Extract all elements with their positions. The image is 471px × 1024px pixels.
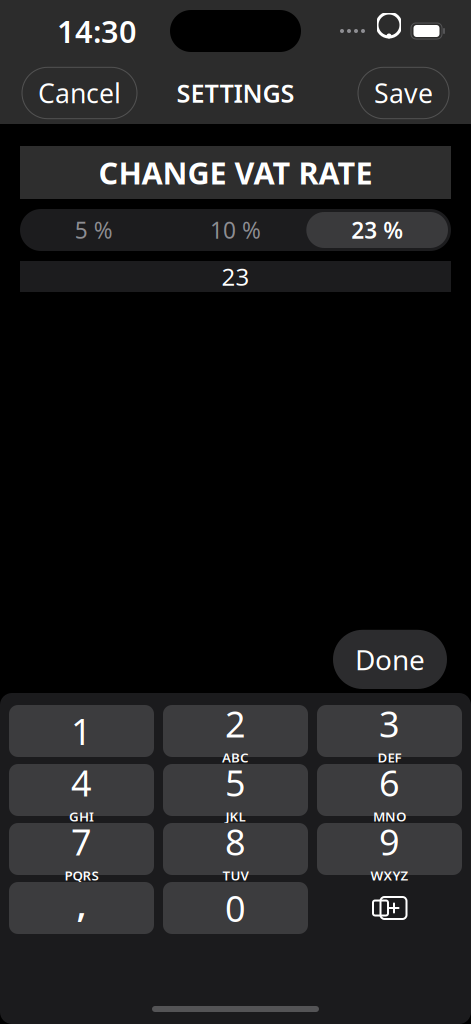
staticText: JKL <box>225 808 245 825</box>
staticText: 10 % <box>210 215 261 245</box>
staticText: WXYZ <box>370 867 408 884</box>
button[interactable]: 5 <box>163 764 308 816</box>
staticText: Save <box>374 75 433 111</box>
staticText: 23 <box>221 261 249 292</box>
button[interactable]: 23 % <box>306 212 448 248</box>
button[interactable]: 9 <box>317 823 462 875</box>
staticText: , <box>76 879 86 927</box>
button[interactable]: 8 <box>163 823 308 875</box>
button[interactable]: 4 <box>9 764 154 816</box>
staticText: 5 <box>225 759 246 806</box>
staticText: DEF <box>377 749 401 766</box>
staticText: TUV <box>222 867 248 884</box>
staticText: 2 <box>225 700 246 747</box>
button[interactable]: Done <box>333 630 447 689</box>
staticText: 8 <box>225 818 246 865</box>
button[interactable]: 7 <box>9 823 154 875</box>
staticText: MNO <box>373 808 406 825</box>
staticText: 5 % <box>75 215 113 245</box>
button[interactable]: 1 <box>9 705 154 757</box>
button[interactable]: 3 <box>317 705 462 757</box>
button[interactable]: 5 % <box>23 212 165 248</box>
staticText: 9 <box>379 818 400 865</box>
staticText: 6 <box>379 759 400 806</box>
button[interactable]: 0 <box>163 882 308 934</box>
button[interactable]: Save <box>358 67 449 119</box>
staticText: SETTINGS <box>176 76 294 110</box>
button[interactable]: Cancel <box>22 67 137 119</box>
staticText: 4 <box>71 759 92 806</box>
button[interactable]: 2 <box>163 705 308 757</box>
button[interactable]: Comma <box>9 882 154 934</box>
staticText: Cancel <box>38 75 121 111</box>
staticText: GHI <box>69 808 94 825</box>
staticText: PQRS <box>64 867 98 884</box>
staticText: 23 % <box>351 215 403 245</box>
staticText: 0 <box>225 884 246 932</box>
button[interactable]: 6 <box>317 764 462 816</box>
staticText: CHANGE VAT RATE <box>98 152 372 193</box>
staticText: Done <box>355 641 425 678</box>
button[interactable]: Delete <box>317 882 462 934</box>
staticText: 3 <box>379 700 400 747</box>
staticText: ABC <box>222 749 249 766</box>
staticText: 14:30 <box>57 11 137 51</box>
staticText: 7 <box>71 818 92 865</box>
staticText: 1 <box>71 707 92 755</box>
button[interactable]: 10 % <box>165 212 306 248</box>
